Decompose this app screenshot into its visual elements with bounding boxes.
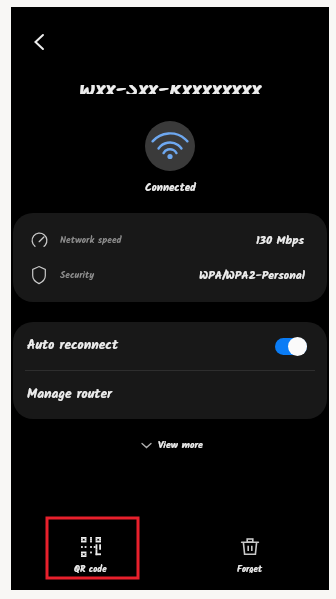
button[interactable]: Forget	[215, 529, 285, 581]
staticText: Auto reconnect	[27, 335, 118, 357]
staticText: Security	[60, 268, 95, 283]
staticText: Manage router	[27, 384, 112, 406]
staticText: Forget	[237, 562, 263, 573]
staticText: Connected	[145, 179, 196, 197]
staticText: View more	[158, 437, 203, 453]
button[interactable]: View more	[142, 437, 203, 453]
staticText: WPA/WPA2-Personal	[199, 266, 305, 285]
button[interactable]: Manage router	[13, 371, 327, 419]
staticText: Wxx-Sxx-Rxxxxxxxx	[79, 85, 262, 94]
staticText: QR code	[74, 562, 107, 573]
button[interactable]: Back	[19, 22, 59, 62]
button[interactable]: QR code	[52, 529, 129, 581]
button[interactable]: Auto reconnect	[13, 322, 327, 370]
staticText: 130 Mbps	[256, 231, 305, 250]
staticText: Network speed	[60, 233, 122, 248]
